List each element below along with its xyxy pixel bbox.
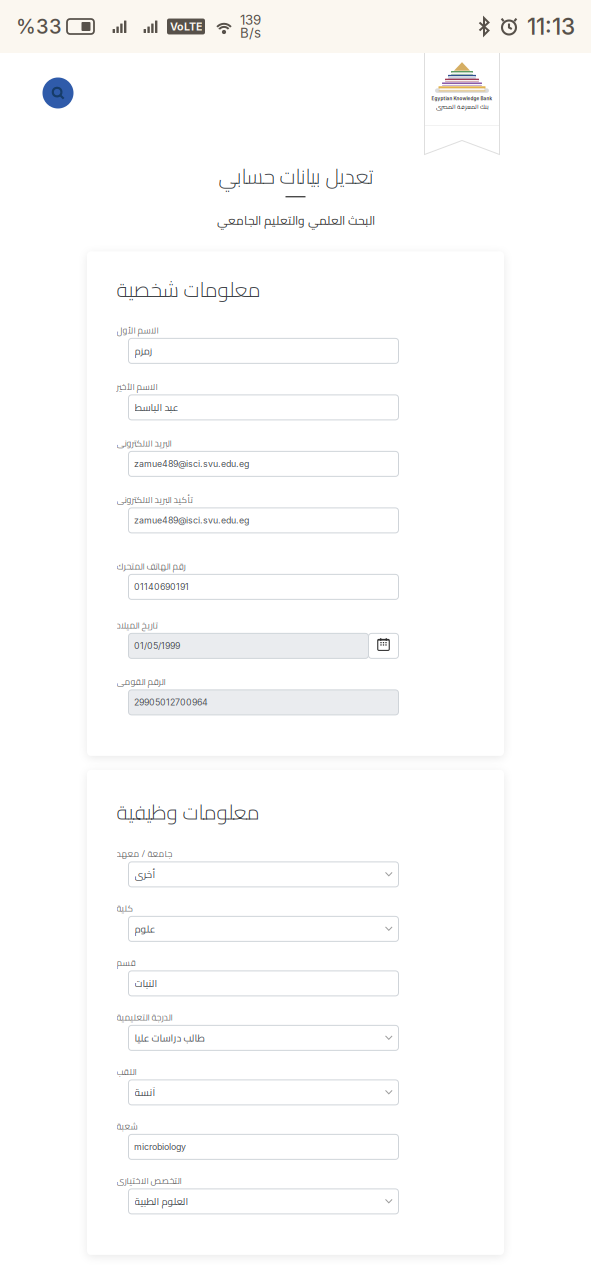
button[interactable]: رقم الهاتف المتحرك — [128, 551, 398, 599]
button[interactable]: قسم — [128, 958, 398, 996]
staticText: قسم — [116, 955, 135, 971]
button[interactable]: تاريخ الميلاد — [128, 618, 398, 658]
button[interactable]: الاسم الأول — [128, 325, 398, 363]
staticText: كلية — [116, 900, 133, 917]
button[interactable]: الاسم الأخير — [128, 382, 398, 420]
button[interactable]: اللقب — [128, 1067, 398, 1105]
staticText: 139 — [240, 12, 261, 28]
staticText: اللقب — [116, 1064, 136, 1080]
staticText: شعبة — [116, 1118, 137, 1135]
staticText: 11:13 — [527, 13, 575, 40]
staticText: طالب دراسات عليا — [134, 1028, 204, 1047]
staticText: 29905012700964 — [134, 697, 208, 708]
staticText: معلومات شخصية — [116, 270, 260, 309]
staticText: تعديل بيانات حسابي — [218, 156, 373, 196]
button[interactable]: Pick a date — [368, 633, 398, 658]
staticText: %33 — [16, 14, 62, 39]
staticText: عبد الباسط — [134, 398, 178, 417]
staticText: العلوم الطبية — [134, 1192, 188, 1211]
button[interactable]: التخصص الاختيارى — [128, 1176, 398, 1214]
button[interactable]: البريد الالكترونى — [128, 438, 398, 476]
staticText: تأكيد البريد الالكترونى — [116, 492, 192, 508]
staticText: الاسم الأخير — [116, 379, 157, 395]
staticText: النبات — [134, 974, 157, 993]
staticText: الدرجة التعليمية — [116, 1009, 172, 1026]
staticText: zamue489@isci.svu.edu.eg — [134, 515, 249, 526]
staticText: الاسم الأول — [116, 322, 158, 339]
staticText: zamue489@isci.svu.edu.eg — [134, 459, 249, 469]
staticText: التخصص الاختيارى — [116, 1173, 181, 1189]
staticText: 01140690191 — [134, 582, 189, 592]
staticText: الرقم القومى — [116, 674, 165, 690]
staticText: microbiology — [134, 1142, 186, 1152]
staticText: البريد الالكترونى — [116, 435, 171, 452]
staticText: 01/05/1999 — [134, 641, 180, 651]
staticText: بنك المعرفة المصرى — [435, 101, 488, 112]
staticText: أخرى — [134, 865, 155, 884]
staticText: زمزم — [134, 341, 152, 360]
button[interactable]: Search — [38, 73, 78, 113]
button[interactable]: جامعة / معهد — [128, 849, 398, 887]
staticText: VoLTE — [170, 20, 202, 33]
staticText: Egyptian Knowledge Bank — [431, 96, 492, 101]
staticText: علوم — [134, 919, 155, 938]
button[interactable]: كلية — [128, 903, 398, 941]
button[interactable]: الرقم القومى — [128, 677, 398, 715]
button[interactable]: شعبة — [128, 1121, 398, 1159]
button[interactable]: الدرجة التعليمية — [128, 1012, 398, 1050]
staticText: رقم الهاتف المتحرك — [116, 558, 185, 575]
staticText: آنسة — [134, 1083, 155, 1102]
staticText: تاريخ الميلاد — [116, 617, 157, 634]
staticText: البحث العلمي والتعليم الجامعي — [216, 209, 374, 232]
staticText: معلومات وظيفية — [116, 792, 259, 831]
staticText: جامعة / معهد — [116, 846, 172, 862]
button[interactable]: تأكيد البريد الالكترونى — [128, 495, 398, 533]
staticText: B/s — [240, 25, 261, 41]
